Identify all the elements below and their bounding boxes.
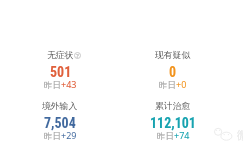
button[interactable]: 累计治愈 — [123, 101, 223, 143]
staticText: 昨日+29 — [44, 129, 77, 141]
staticText: 累计治愈 — [155, 101, 191, 112]
button[interactable]: 境外输入 — [10, 101, 110, 143]
staticText: 0 — [169, 64, 177, 80]
staticText: 微 — [237, 128, 243, 142]
staticText: 昨日+74 — [157, 129, 190, 141]
staticText: 501 — [50, 64, 72, 80]
staticText: 7,504 — [44, 115, 76, 131]
button[interactable]: 指标说明 — [74, 52, 81, 59]
staticText: 昨日+43 — [44, 78, 77, 90]
staticText: 无症状 — [47, 50, 74, 61]
staticText: 昨日+0 — [159, 78, 187, 90]
staticText: 112,101 — [150, 115, 196, 131]
staticText: 境外输入 — [42, 101, 78, 112]
staticText: ? — [76, 52, 79, 59]
staticText: 现有疑似 — [155, 50, 191, 61]
button[interactable]: 现有疑似 — [123, 50, 223, 92]
button[interactable]: 无症状 — [10, 50, 110, 92]
